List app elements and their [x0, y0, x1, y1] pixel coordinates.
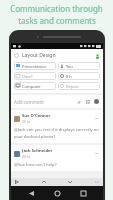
button[interactable]: Attach file: [75, 98, 82, 105]
button[interactable]: More options: [93, 150, 100, 157]
button[interactable]: More: [94, 179, 100, 185]
staticText: Add comment: [14, 99, 44, 105]
staticText: @Jack can you test if it displays correc…: [14, 127, 99, 133]
staticText: Sue O'Connor: [22, 113, 51, 119]
button[interactable]: Report: [58, 82, 100, 90]
button[interactable]: Add comment: [11, 95, 103, 108]
staticText: 20 m: [22, 154, 31, 159]
staticText: 25 m: [22, 119, 31, 124]
staticText: 8 h: [66, 74, 72, 79]
staticText: Presentation: [22, 64, 46, 69]
button[interactable]: Sue O'Connor: [11, 110, 103, 143]
staticText: Computer: [22, 84, 41, 89]
button[interactable]: You: [58, 62, 100, 70]
staticText: Layout Design: [22, 52, 56, 59]
button[interactable]: Hide keyboard: [14, 179, 20, 185]
staticText: tasks and comments: [18, 15, 96, 26]
button[interactable]: Emoji: [93, 98, 100, 105]
button[interactable]: More options: [93, 115, 100, 122]
staticText: your Android phone?: [14, 134, 56, 140]
button[interactable]: Jack Schneider: [11, 145, 103, 171]
staticText: @Sue how can I help?: [14, 162, 57, 168]
staticText: You: [66, 64, 73, 69]
button[interactable]: Insert table: [84, 98, 91, 105]
button[interactable]: Date?: [14, 72, 56, 80]
button[interactable]: Presentation: [14, 62, 56, 70]
button[interactable]: Next field: [67, 179, 73, 185]
button[interactable]: Computer: [14, 82, 56, 90]
button[interactable]: Toggle complete: [14, 53, 19, 58]
button[interactable]: Home: [51, 187, 63, 199]
button[interactable]: Previous field: [41, 179, 47, 185]
button[interactable]: Assignee: [94, 53, 100, 59]
button[interactable]: 8 h: [58, 72, 100, 80]
button[interactable]: Recents: [77, 187, 89, 199]
button[interactable]: Back: [25, 187, 37, 199]
staticText: Jack Schneider: [22, 148, 53, 154]
staticText: Date?: [22, 74, 33, 79]
button[interactable]: Toggle complete: [11, 49, 103, 93]
staticText: Communication through: [10, 3, 103, 14]
staticText: Report: [66, 84, 79, 89]
